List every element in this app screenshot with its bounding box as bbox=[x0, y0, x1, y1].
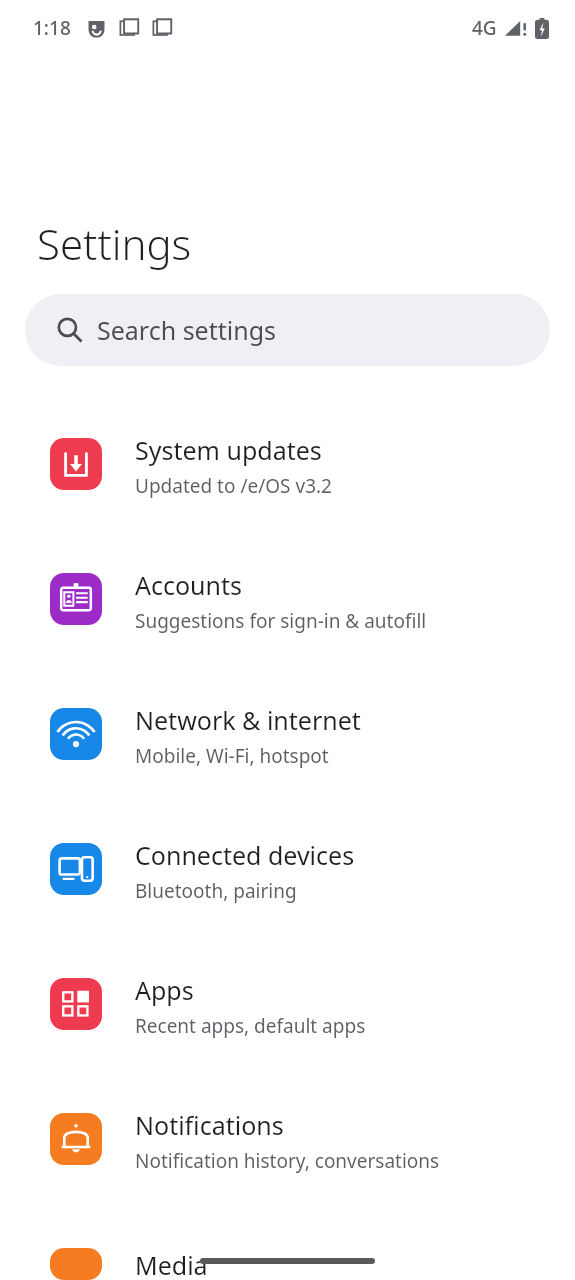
staticText: Network & internet bbox=[135, 703, 361, 737]
staticText: Media bbox=[135, 1248, 208, 1280]
button[interactable]: Apps bbox=[0, 955, 575, 1090]
staticText: Connected devices bbox=[135, 838, 355, 872]
staticText: Search settings bbox=[97, 313, 277, 347]
button[interactable]: Notifications bbox=[0, 1090, 575, 1225]
staticText: Notifications bbox=[135, 1108, 284, 1142]
staticText: Apps bbox=[135, 973, 194, 1007]
staticText: Notification history, conversations bbox=[135, 1148, 440, 1174]
button[interactable]: Accounts bbox=[0, 550, 575, 685]
staticText: Recent apps, default apps bbox=[135, 1013, 366, 1039]
staticText: Mobile, Wi-Fi, hotspot bbox=[135, 743, 329, 769]
button[interactable]: Media bbox=[0, 1248, 575, 1280]
button[interactable]: System updates bbox=[0, 415, 575, 550]
button[interactable]: Connected devices bbox=[0, 820, 575, 955]
button[interactable]: Network & internet bbox=[0, 685, 575, 820]
staticText: Settings bbox=[37, 215, 192, 272]
staticText: 4G bbox=[472, 15, 497, 41]
staticText: Bluetooth, pairing bbox=[135, 878, 297, 904]
staticText: Suggestions for sign-in & autofill bbox=[135, 608, 427, 634]
staticText: Updated to /e/OS v3.2 bbox=[135, 473, 332, 499]
button[interactable]: Search settings bbox=[25, 294, 550, 366]
staticText: Accounts bbox=[135, 568, 243, 602]
staticText: System updates bbox=[135, 433, 322, 467]
staticText: 1:18 bbox=[33, 15, 71, 41]
